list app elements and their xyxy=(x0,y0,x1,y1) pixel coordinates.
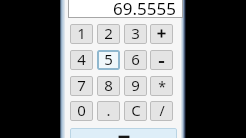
button[interactable] xyxy=(70,128,177,138)
button[interactable]: 2 xyxy=(97,24,120,44)
staticText: 2 xyxy=(104,24,113,43)
staticText: 7 xyxy=(77,76,86,95)
button[interactable]: 8 xyxy=(97,76,120,96)
staticText: 9 xyxy=(131,76,140,95)
staticText: 5 xyxy=(104,50,113,69)
button[interactable]: 3 xyxy=(124,24,147,44)
staticText: 3 xyxy=(131,24,140,43)
staticText: 0 xyxy=(77,101,86,120)
staticText: 6 xyxy=(131,50,140,69)
button[interactable]: 6 xyxy=(124,50,147,70)
button[interactable]: 5 xyxy=(97,50,120,70)
button[interactable]: 7 xyxy=(70,76,93,96)
staticText: / xyxy=(159,101,165,120)
button[interactable]: 69.5555 xyxy=(68,0,183,18)
button[interactable]: 4 xyxy=(70,50,93,70)
staticText: C xyxy=(131,101,141,120)
button[interactable]: . xyxy=(97,101,120,121)
staticText: 8 xyxy=(104,76,113,95)
button[interactable]: Plus xyxy=(150,24,173,44)
staticText: * xyxy=(158,77,166,96)
button[interactable]: / xyxy=(150,101,173,121)
button[interactable]: 0 xyxy=(70,101,93,121)
staticText: 1 xyxy=(77,24,86,43)
button[interactable]: * xyxy=(150,76,173,96)
button[interactable]: 9 xyxy=(124,76,147,96)
button[interactable]: Minus xyxy=(150,50,173,70)
staticText: . xyxy=(106,101,111,120)
button[interactable]: 1 xyxy=(70,24,93,44)
button[interactable]: C xyxy=(124,101,147,121)
staticText: 69.5555 xyxy=(113,0,176,18)
staticText: 4 xyxy=(77,50,86,69)
